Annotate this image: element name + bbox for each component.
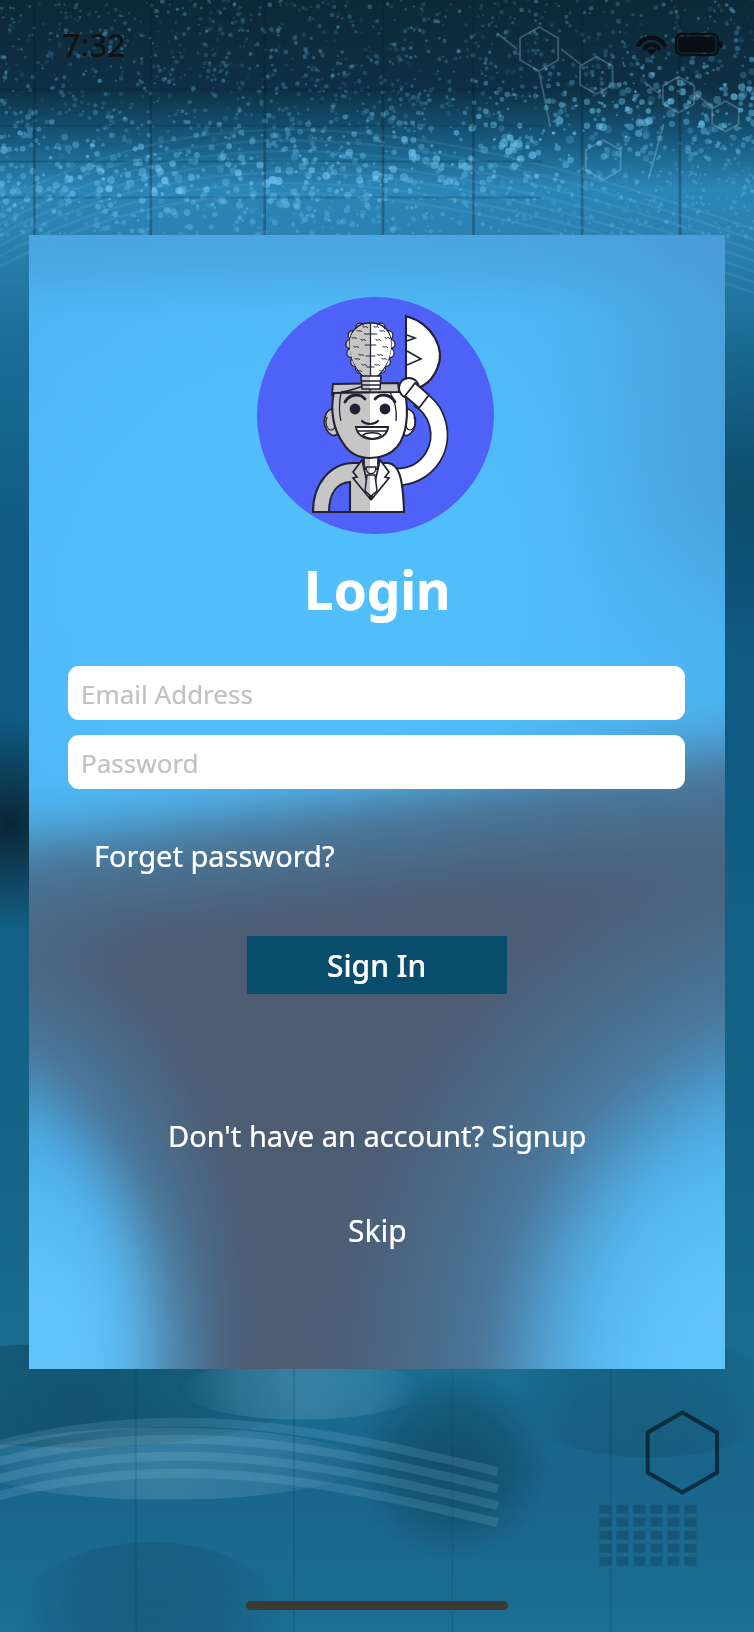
button[interactable]: Email Address [68, 666, 685, 720]
button[interactable]: Sign In [247, 936, 507, 994]
staticText: Login [304, 553, 451, 625]
button[interactable]: Skip [338, 1206, 417, 1255]
staticText: Forget password? [94, 836, 335, 875]
staticText: Sign In [327, 945, 427, 986]
staticText: Password [81, 745, 199, 780]
staticText: Don't have an account? Signup [168, 1116, 587, 1155]
staticText: Skip [348, 1210, 407, 1251]
button[interactable]: Don't have an account? Signup [160, 1112, 595, 1159]
staticText: Email Address [81, 676, 253, 711]
button[interactable]: Password [68, 735, 685, 789]
button[interactable]: Forget password? [90, 832, 339, 879]
staticText: 7:32 [62, 23, 126, 67]
